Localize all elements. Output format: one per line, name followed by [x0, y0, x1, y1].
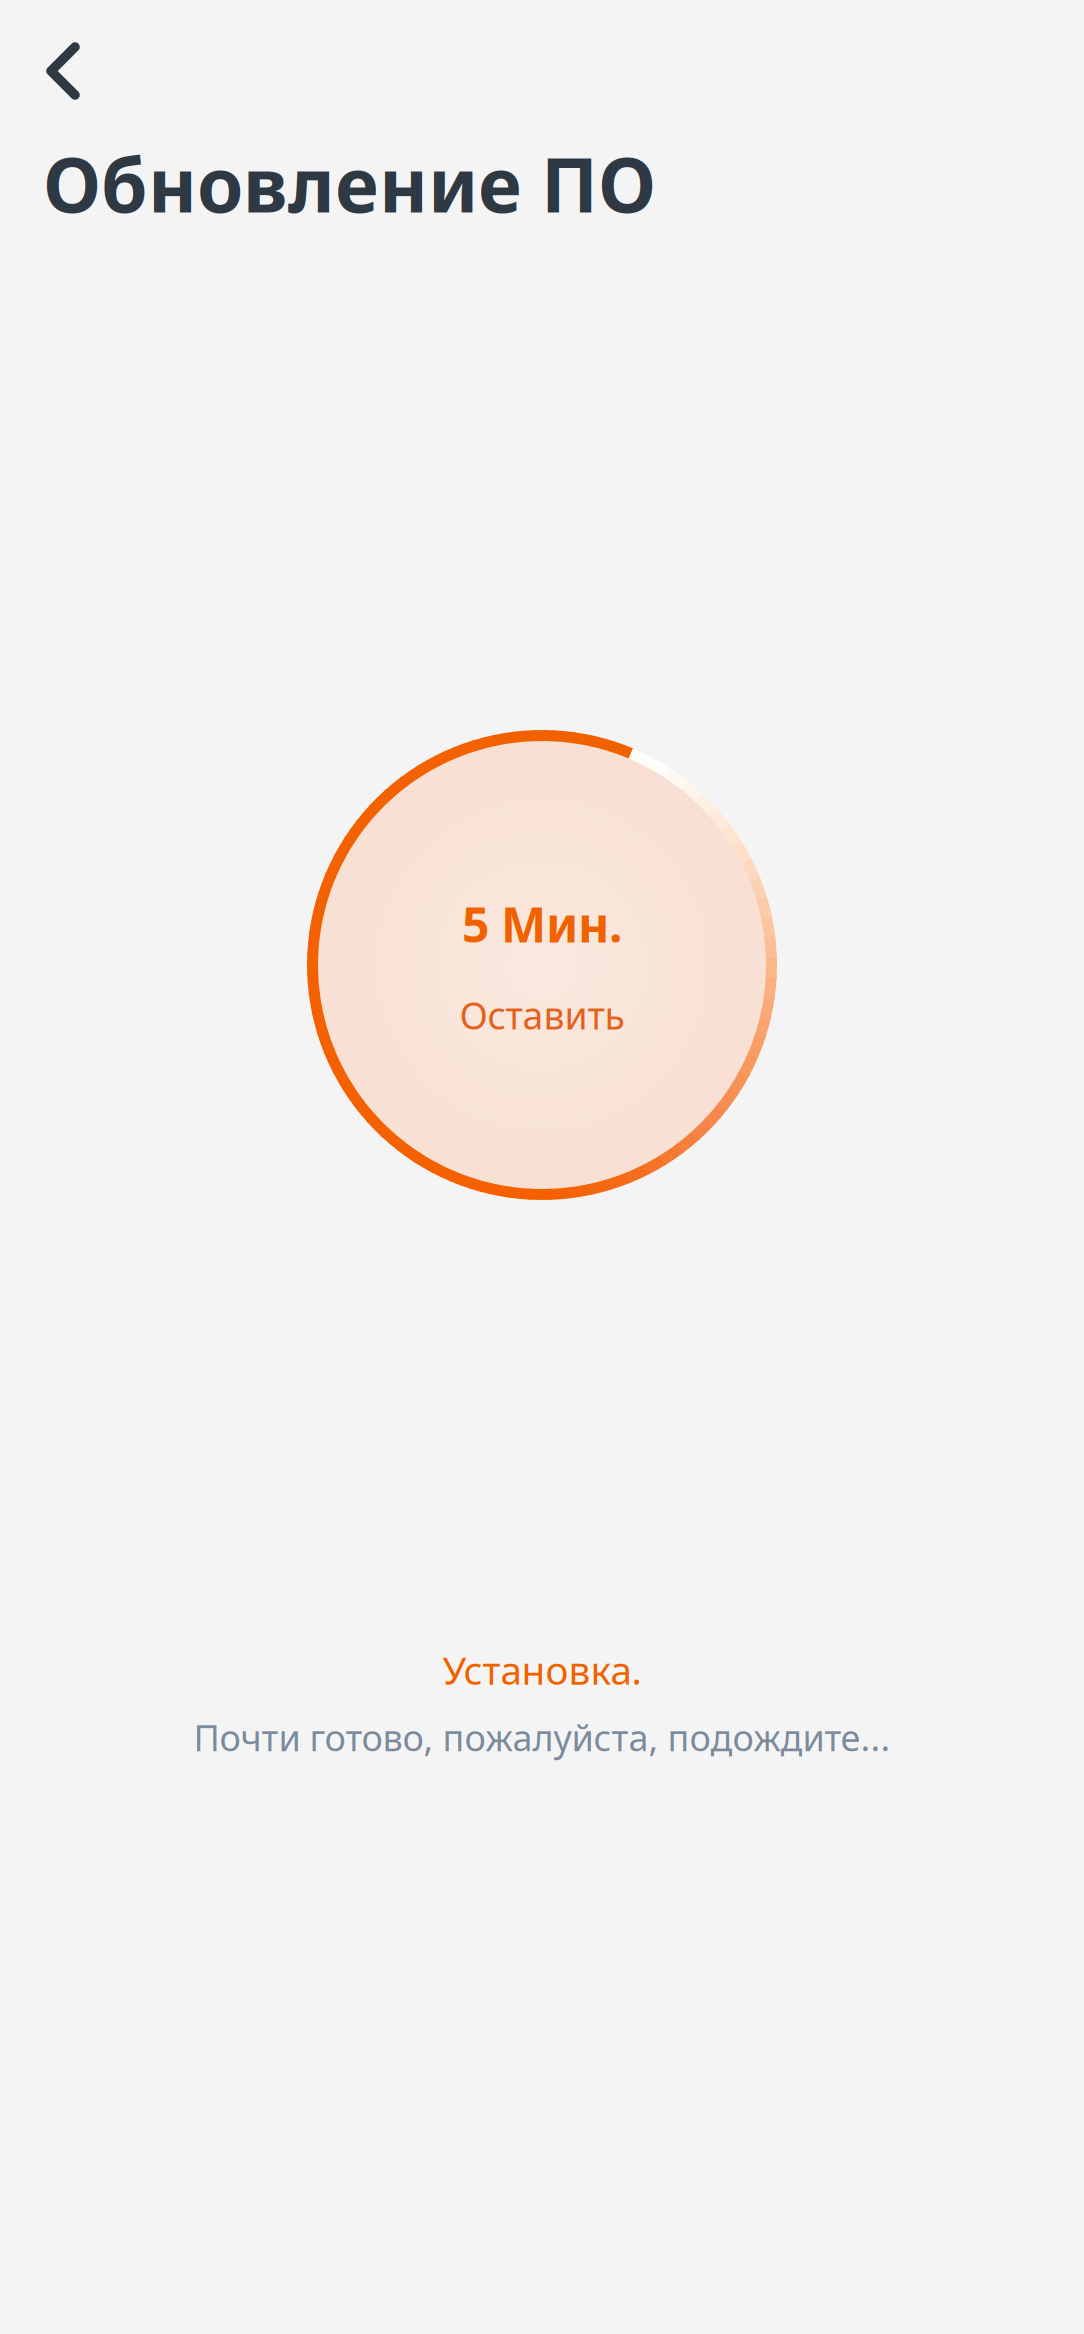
button[interactable]: Back: [32, 30, 94, 112]
button[interactable]: 5 Мин.: [307, 730, 777, 1200]
staticText: Обновление ПО: [43, 134, 656, 233]
staticText: 5 Мин.: [462, 892, 622, 956]
staticText: Установка.: [442, 1644, 641, 1695]
staticText: Почти готово, пожалуйста, подождите...: [193, 1713, 890, 1761]
staticText: Оставить: [459, 990, 624, 1040]
